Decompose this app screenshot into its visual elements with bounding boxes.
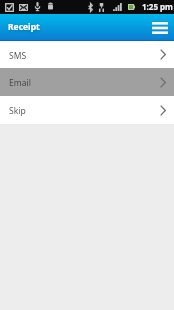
button[interactable]: Skip bbox=[0, 96, 174, 124]
staticText: 1:25 pm bbox=[142, 1, 173, 12]
staticText: Receipt bbox=[8, 21, 40, 33]
button[interactable]: Email bbox=[0, 68, 174, 96]
staticText: SMS bbox=[9, 50, 160, 62]
button[interactable]: SMS bbox=[0, 41, 174, 68]
button[interactable]: Menu bbox=[150, 19, 169, 36]
staticText: Email bbox=[9, 77, 160, 89]
staticText: Skip bbox=[9, 105, 160, 117]
